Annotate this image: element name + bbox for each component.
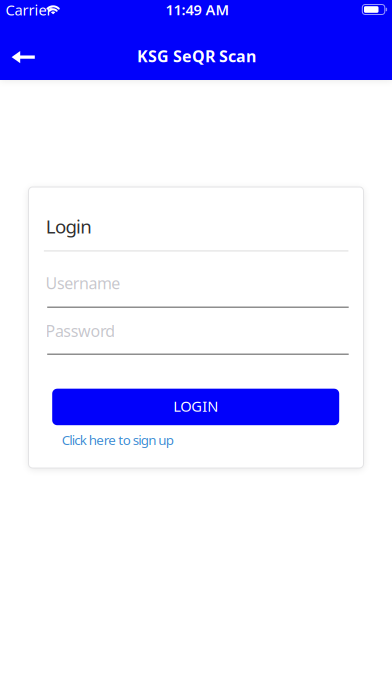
button[interactable]: LOGIN <box>52 389 339 425</box>
staticText: 11:49 AM <box>166 0 230 19</box>
button[interactable]: Click here to sign up <box>62 431 174 449</box>
button[interactable] <box>3 43 42 72</box>
staticText: KSG SeQR Scan <box>137 45 256 67</box>
staticText: Username <box>45 272 120 294</box>
staticText: LOGIN <box>173 396 218 416</box>
staticText: Click here to sign up <box>62 431 174 449</box>
staticText: Login <box>46 214 92 239</box>
staticText: Carrier <box>5 0 52 20</box>
staticText: Password <box>45 320 115 341</box>
